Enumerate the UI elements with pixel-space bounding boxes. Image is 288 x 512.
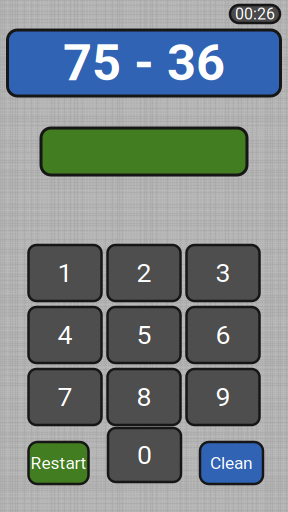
staticText: 75 - 36 xyxy=(63,33,225,93)
button[interactable]: Timer xyxy=(230,5,280,23)
button[interactable]: 3 xyxy=(186,245,259,301)
button[interactable]: 0 xyxy=(108,428,181,482)
button[interactable]: 9 xyxy=(186,369,259,425)
button[interactable]: 4 xyxy=(28,307,101,363)
staticText: 9 xyxy=(215,381,230,413)
staticText: Restart xyxy=(30,453,86,473)
button[interactable]: 7 xyxy=(28,369,101,425)
staticText: 6 xyxy=(215,319,230,351)
staticText: 2 xyxy=(136,257,151,289)
button[interactable]: 2 xyxy=(107,245,180,301)
staticText: 3 xyxy=(215,257,230,289)
staticText: 00:26 xyxy=(235,5,275,23)
button[interactable]: 1 xyxy=(28,245,101,301)
button[interactable]: 5 xyxy=(107,307,180,363)
staticText: 1 xyxy=(57,257,72,289)
button[interactable]: Restart xyxy=(28,442,88,484)
staticText: 4 xyxy=(57,319,72,351)
button[interactable]: 6 xyxy=(186,307,259,363)
staticText: 0 xyxy=(137,439,152,471)
staticText: 8 xyxy=(136,381,151,413)
staticText: 7 xyxy=(57,381,72,413)
staticText: Clean xyxy=(210,453,253,473)
staticText: 5 xyxy=(136,319,151,351)
button[interactable]: 8 xyxy=(107,369,180,425)
button[interactable]: Clean xyxy=(200,442,263,484)
